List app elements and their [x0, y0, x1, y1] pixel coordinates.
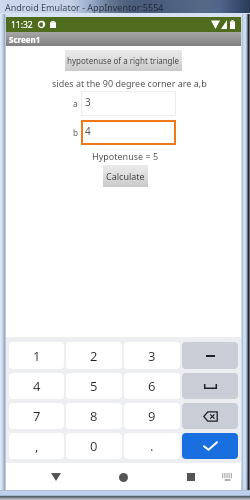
button[interactable]: .: [124, 433, 180, 459]
button[interactable]: Backspace: [182, 403, 238, 429]
button[interactable]: 5: [66, 373, 122, 399]
staticText: 9: [148, 407, 156, 425]
staticText: 4: [85, 124, 91, 138]
button[interactable]: 4: [9, 373, 64, 399]
staticText: hypotenuse of a right triangle: [67, 55, 180, 66]
button[interactable]: Calculate: [103, 165, 148, 187]
staticText: a: [73, 98, 78, 109]
button[interactable]: 4: [81, 120, 176, 145]
staticText: b: [73, 127, 78, 138]
button[interactable]: 7: [9, 403, 64, 429]
button[interactable]: Home: [113, 467, 133, 487]
button[interactable]: ,: [9, 433, 64, 459]
staticText: 5: [90, 377, 98, 395]
button[interactable]: hypotenuse of a right triangle: [65, 50, 182, 71]
button[interactable]: Space: [182, 373, 238, 399]
button[interactable]: Back: [46, 467, 66, 487]
staticText: 7: [33, 407, 41, 425]
staticText: 6: [148, 377, 156, 395]
button[interactable]: 0: [66, 433, 122, 459]
staticText: 4: [33, 377, 41, 395]
staticText: 1: [33, 347, 41, 365]
staticText: Hypotenuse = 5: [92, 150, 159, 162]
button[interactable]: Minus: [182, 342, 238, 369]
button[interactable]: Recents: [181, 467, 201, 487]
staticText: 11:32: [11, 19, 33, 31]
staticText: ,: [35, 437, 39, 455]
staticText: .: [150, 437, 154, 455]
staticText: 2: [90, 347, 98, 365]
button[interactable]: 3: [124, 342, 180, 369]
button[interactable]: Enter: [182, 433, 238, 459]
button[interactable]: 8: [66, 403, 122, 429]
button[interactable]: 3: [81, 91, 176, 116]
button[interactable]: 6: [124, 373, 180, 399]
button[interactable]: 9: [124, 403, 180, 429]
staticText: sides at the 90 degree corner are a,b: [52, 77, 207, 89]
staticText: 3: [85, 95, 91, 109]
staticText: 8: [90, 407, 98, 425]
staticText: 3: [148, 347, 156, 365]
button[interactable]: Switch keyboard: [219, 469, 235, 485]
staticText: Screen1: [9, 34, 41, 45]
staticText: Android Emulator - AppInventor:5554: [5, 1, 164, 13]
staticText: 0: [90, 437, 98, 455]
staticText: Calculate: [106, 170, 145, 182]
button[interactable]: 2: [66, 342, 122, 369]
button[interactable]: 1: [9, 342, 64, 369]
